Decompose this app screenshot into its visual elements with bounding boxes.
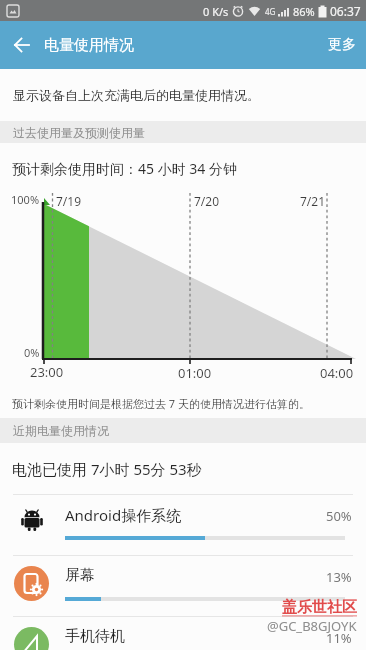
staticText: 04:00: [320, 364, 354, 382]
staticText: 50%: [326, 507, 352, 525]
staticText: 23:00: [30, 363, 64, 381]
button[interactable]: 更多: [318, 21, 366, 69]
staticText: 01:00: [178, 364, 212, 382]
staticText: 13%: [326, 568, 352, 586]
staticText: 过去使用量及预测使用量: [13, 125, 145, 140]
staticText: 06:37: [330, 3, 361, 19]
staticText: @GC_B8GJOYK: [267, 617, 357, 635]
staticText: 7/21: [300, 193, 326, 209]
staticText: 7/20: [194, 193, 220, 209]
button[interactable]: 手机待机: [0, 617, 366, 650]
staticText: 86%: [293, 4, 315, 19]
staticText: 100%: [11, 192, 40, 207]
staticText: 7/19: [56, 193, 82, 209]
staticText: 0 K/s: [203, 4, 229, 19]
staticText: 预计剩余使用时间：45 小时 34 分钟: [12, 159, 237, 178]
staticText: 屏幕: [65, 566, 95, 585]
staticText: 显示设备自上次充满电后的电量使用情况。: [13, 87, 260, 103]
button[interactable]: Android操作系统: [0, 495, 366, 555]
staticText: 0%: [24, 345, 40, 360]
staticText: Android操作系统: [65, 505, 182, 525]
staticText: 手机待机: [65, 627, 125, 646]
staticText: 更多: [328, 36, 356, 54]
staticText: 盖乐世社区: [282, 598, 357, 617]
button[interactable]: 屏幕: [0, 556, 366, 616]
button[interactable]: [0, 21, 44, 69]
staticText: 11%: [326, 629, 352, 647]
staticText: 4G: [265, 6, 276, 17]
staticText: 电池已使用 7小时 55分 53秒: [12, 459, 202, 479]
staticText: 近期电量使用情况: [13, 423, 109, 438]
staticText: 电量使用情况: [44, 36, 134, 55]
staticText: 预计剩余使用时间是根据您过去 7 天的使用情况进行估算的。: [12, 396, 311, 411]
